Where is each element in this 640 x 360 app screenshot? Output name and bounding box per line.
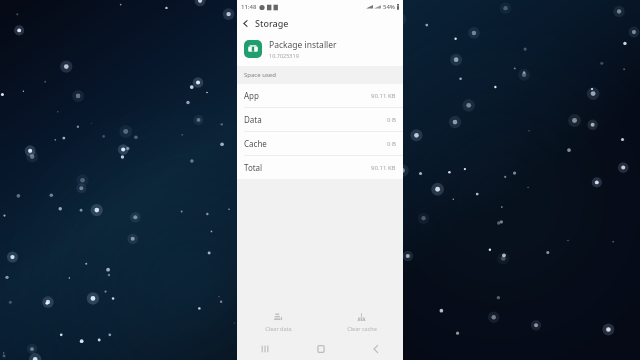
staticText: Data xyxy=(244,114,262,125)
button[interactable]: Total xyxy=(237,156,403,179)
button[interactable]: Clear cache xyxy=(320,306,403,338)
staticText: Clear cache xyxy=(347,325,377,332)
staticText: 0 B xyxy=(387,116,396,124)
staticText: 54% xyxy=(383,3,395,11)
staticText: 0 B xyxy=(387,140,396,148)
staticText: Storage xyxy=(255,17,289,29)
button[interactable]: Cache xyxy=(237,132,403,155)
staticText: 90.11 KB xyxy=(371,164,396,172)
button[interactable]: App xyxy=(237,84,403,107)
button[interactable]: Back xyxy=(348,338,403,360)
button[interactable]: Clear data xyxy=(237,306,320,338)
button[interactable]: Data xyxy=(237,108,403,131)
staticText: Clear data xyxy=(265,325,292,332)
staticText: Space used xyxy=(244,71,276,79)
staticText: 11:48 xyxy=(241,3,257,11)
staticText: 90.11 KB xyxy=(371,92,396,100)
button[interactable]: Back xyxy=(237,15,253,31)
staticText: Package installer xyxy=(269,39,337,51)
staticText: App xyxy=(244,90,259,101)
staticText: Cache xyxy=(244,138,267,149)
staticText: 10.7025319 xyxy=(269,52,299,59)
staticText: Total xyxy=(244,162,263,173)
button[interactable]: Recents xyxy=(237,338,293,360)
button[interactable]: Package installer xyxy=(237,32,403,66)
button[interactable]: Home xyxy=(293,338,348,360)
